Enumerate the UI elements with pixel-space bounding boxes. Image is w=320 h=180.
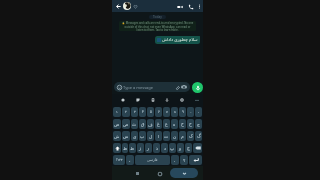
button[interactable]: ث [131,119,138,129]
button[interactable]: ج [195,119,202,129]
button[interactable]: Clipboard [150,97,156,103]
button[interactable]: Video call [175,2,184,11]
button[interactable]: ، [195,107,202,117]
button[interactable]: ظ [122,143,128,153]
staticText: ک [189,134,193,139]
staticText: و [179,146,182,151]
button[interactable]: More options [195,2,203,10]
staticText: ?۱۲۳ [116,158,123,162]
button[interactable]: Call [186,2,195,11]
button[interactable]: Emoji [116,84,122,90]
staticText: ع [165,122,168,127]
button[interactable]: خ [179,119,186,129]
button[interactable]: ۲ [122,107,130,117]
button[interactable]: Settings [179,97,185,103]
button[interactable]: ذ [153,143,160,153]
button[interactable]: ۴ [139,107,146,117]
button[interactable]: More tools [194,98,199,103]
button[interactable]: ت [163,131,170,141]
staticText: ز [139,146,142,151]
button[interactable]: ر [145,143,152,153]
button[interactable]: ل [147,131,154,141]
button[interactable]: Today [149,15,166,19]
button[interactable]: ه [171,119,178,129]
staticText: ۷ [166,110,168,114]
button[interactable]: ؟ [180,155,188,165]
staticText: ؟ [183,158,186,163]
staticText: Type a message [123,85,154,90]
button[interactable]: ۶ [155,107,162,117]
staticText: گ [197,134,201,139]
button[interactable]: ?۱۲۳ [113,155,125,165]
button[interactable]: ۳ [131,107,138,117]
button[interactable]: ش [113,131,121,141]
button[interactable]: Voice input [164,97,170,103]
button[interactable]: Enter [189,155,202,165]
button[interactable]: غ [155,119,162,129]
button[interactable]: ص [122,119,130,129]
staticText: ن [173,134,177,139]
button[interactable]: ۷ [163,107,170,117]
staticText: پ [170,146,175,151]
button[interactable]: فارسی [135,155,170,165]
button[interactable]: د [161,143,168,153]
button[interactable]: ف [147,119,154,129]
staticText: ۱ [116,110,118,114]
staticText: ۸ [174,110,176,114]
staticText: ی [133,134,137,139]
staticText: 🔒 Messages and calls are end-to-end encr… [121,21,194,31]
button[interactable]: ۱ [113,107,121,117]
button[interactable]: ۸ [171,107,178,117]
button[interactable]: Attach [174,84,180,90]
button[interactable]: ع [163,119,170,129]
button[interactable]: Hide keyboard [170,168,198,178]
button[interactable]: سلام چطوری داداش [155,36,200,44]
staticText: ه [173,122,176,127]
staticText: ۵ [150,110,152,114]
staticText: س [123,134,129,139]
button[interactable]: ن [171,131,178,141]
button[interactable]: ۵ [147,107,154,117]
button[interactable]: . [171,155,179,165]
staticText: فارسی [147,158,158,162]
button[interactable]: Gboard [120,97,126,103]
button[interactable]: ی [131,131,138,141]
button[interactable]: و [177,143,184,153]
button[interactable]: گ [195,131,202,141]
button[interactable]: ۰ [187,107,194,117]
staticText: ا [158,134,160,139]
button[interactable]: پ [169,143,176,153]
button[interactable]: Voice message [192,82,203,93]
staticText: ض [114,122,120,127]
button[interactable]: Home [155,169,164,178]
staticText: سلام چطوری داداش [162,37,198,43]
button[interactable]: س [122,131,130,141]
staticText: ۶ [158,110,160,114]
button[interactable]: ۹ [179,107,186,117]
staticText: ۲ [125,110,127,114]
button[interactable]: ق [139,119,146,129]
button[interactable]: Stickers [135,97,141,103]
button[interactable]: ح [187,119,194,129]
button[interactable]: Back [115,3,122,10]
button[interactable]: Recent apps [133,169,142,178]
staticText: ق [141,122,145,127]
staticText: د [164,146,166,151]
staticText: . [174,157,176,163]
button[interactable]: ض [113,119,121,129]
button[interactable]: م [179,131,186,141]
button[interactable]: ک [187,131,194,141]
button[interactable]: Camera [181,84,187,90]
button[interactable]: Profile photo [123,2,131,10]
button[interactable]: 🔒 Messages and calls are end-to-end encr… [119,21,196,31]
staticText: ۳ [134,110,136,114]
button[interactable]: ا [155,131,162,141]
button[interactable]: Backspace [193,143,202,153]
button[interactable]: ، [126,155,134,165]
button[interactable]: Emoji [114,82,190,92]
button[interactable]: ز [137,143,144,153]
button[interactable]: چ [185,143,192,153]
button[interactable]: ط [129,143,136,153]
button[interactable]: Shift [113,143,121,153]
button[interactable]: ب [139,131,146,141]
